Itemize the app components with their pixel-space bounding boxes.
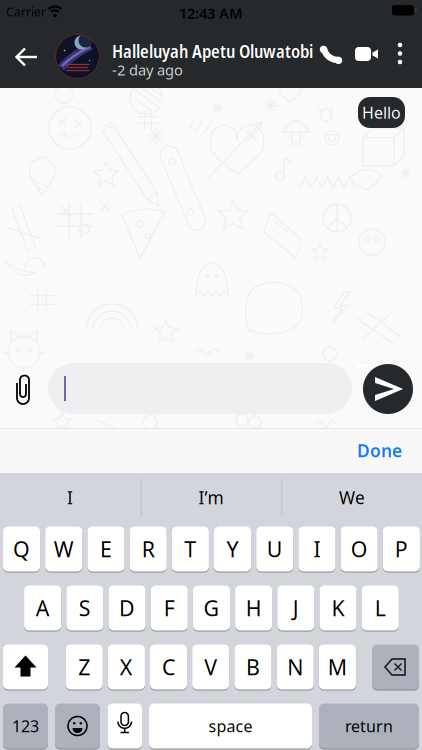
button[interactable]: We: [287, 473, 417, 522]
button[interactable]: H: [235, 585, 272, 631]
button[interactable]: Q: [3, 526, 40, 572]
staticText: B: [246, 653, 260, 681]
staticText: return: [345, 715, 393, 737]
staticText: K: [332, 594, 345, 622]
button[interactable]: G: [193, 585, 230, 631]
button[interactable]: Shift: [3, 644, 48, 690]
button[interactable]: 123: [3, 703, 48, 749]
staticText: C: [162, 653, 175, 681]
button[interactable]: L: [362, 585, 399, 631]
staticText: P: [395, 535, 408, 563]
button[interactable]: J: [277, 585, 314, 631]
button[interactable]: space: [149, 703, 312, 749]
staticText: V: [204, 653, 217, 681]
button[interactable]: A: [24, 585, 61, 631]
button[interactable]: Back: [4, 35, 48, 79]
button[interactable]: F: [151, 585, 188, 631]
button[interactable]: D: [108, 585, 146, 631]
button[interactable]: return: [319, 703, 419, 749]
button[interactable]: Z: [66, 644, 103, 690]
staticText: S: [79, 594, 91, 622]
staticText: T: [184, 535, 196, 563]
staticText: R: [142, 535, 155, 563]
staticText: A: [36, 594, 50, 622]
staticText: W: [54, 535, 74, 563]
staticText: X: [120, 653, 133, 681]
button[interactable]: Delete: [372, 644, 419, 690]
staticText: I: [67, 486, 73, 509]
button[interactable]: R: [130, 526, 167, 572]
staticText: O: [351, 535, 368, 563]
button[interactable]: O: [341, 526, 378, 572]
staticText: I’m: [198, 486, 223, 509]
staticText: U: [267, 535, 283, 563]
staticText: E: [100, 535, 112, 563]
button[interactable]: I’m: [146, 473, 276, 522]
button[interactable]: B: [234, 644, 271, 690]
button[interactable]: Attach file: [8, 370, 38, 410]
staticText: Done: [357, 439, 402, 462]
button[interactable]: V: [192, 644, 229, 690]
staticText: We: [339, 486, 365, 509]
staticText: Halleluyah Apetu Oluwatobi: [112, 39, 313, 63]
staticText: L: [375, 594, 386, 622]
button[interactable]: C: [150, 644, 187, 690]
staticText: I: [313, 535, 320, 563]
button[interactable]: W: [45, 526, 82, 572]
button[interactable]: Emoji: [55, 703, 100, 749]
staticText: D: [119, 594, 135, 622]
staticText: 123: [12, 715, 39, 737]
button[interactable]: More options: [390, 37, 410, 69]
staticText: Hello: [362, 102, 401, 123]
button[interactable]: K: [319, 585, 357, 631]
button[interactable]: U: [256, 526, 293, 572]
button[interactable]: Y: [214, 526, 251, 572]
button[interactable]: E: [87, 526, 124, 572]
staticText: M: [328, 653, 347, 681]
button[interactable]: I: [5, 473, 135, 522]
button[interactable]: Voice call: [318, 39, 346, 67]
staticText: space: [208, 715, 252, 737]
button[interactable]: I: [298, 526, 335, 572]
staticText: J: [293, 594, 299, 622]
staticText: N: [287, 653, 303, 681]
staticText: Q: [13, 535, 30, 563]
staticText: -2 day ago: [112, 60, 183, 79]
button[interactable]: Done: [322, 428, 402, 473]
staticText: F: [164, 594, 175, 622]
staticText: Carrier: [6, 4, 46, 20]
staticText: H: [246, 594, 262, 622]
button[interactable]: Video call: [353, 40, 381, 68]
staticText: Z: [78, 653, 90, 681]
button[interactable]: X: [108, 644, 145, 690]
button[interactable]: Dictate: [107, 703, 142, 749]
button[interactable]: N: [277, 644, 314, 690]
button[interactable]: T: [172, 526, 209, 572]
staticText: G: [203, 594, 219, 622]
staticText: 12:43 AM: [179, 3, 243, 23]
button[interactable]: M: [319, 644, 356, 690]
button[interactable]: S: [66, 585, 103, 631]
button[interactable]: P: [383, 526, 420, 572]
button[interactable]: Profile photo: [55, 34, 100, 79]
staticText: Y: [227, 535, 239, 563]
button[interactable]: Message: [48, 363, 352, 414]
button[interactable]: Send: [363, 364, 413, 414]
